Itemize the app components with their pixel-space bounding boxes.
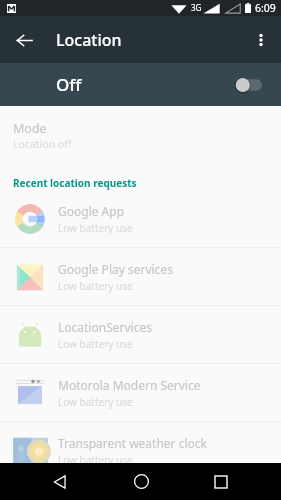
button[interactable]: Google App <box>0 190 281 247</box>
staticText: Low battery use <box>58 453 133 467</box>
staticText: Location <box>56 29 122 51</box>
staticText: Off <box>56 73 82 96</box>
button[interactable]: Home <box>120 463 162 500</box>
button[interactable]: Navigate up <box>8 24 40 56</box>
staticText: Google App <box>58 203 125 219</box>
button[interactable]: Off <box>0 63 281 106</box>
staticText: Google Play services <box>58 261 173 277</box>
staticText: Motorola Modern Service <box>58 377 201 393</box>
staticText: Location off <box>13 137 72 151</box>
staticText: 6:09 <box>255 1 276 15</box>
button[interactable]: Mode <box>0 106 281 151</box>
staticText: Low battery use <box>58 279 133 293</box>
staticText: 3G <box>191 2 202 13</box>
button[interactable]: Transparent weather clock <box>0 422 281 479</box>
button[interactable]: Motorola Modern Service <box>0 364 281 421</box>
button[interactable]: Google Play services <box>0 248 281 305</box>
staticText: Transparent weather clock <box>58 435 207 451</box>
button[interactable]: Back <box>39 463 81 500</box>
other: Location switch <box>236 77 262 93</box>
staticText: Recent location requests <box>13 176 137 190</box>
button[interactable]: Recent apps <box>200 463 242 500</box>
staticText: Low battery use <box>58 337 133 351</box>
staticText: Low battery use <box>58 395 133 409</box>
staticText: Mode <box>13 120 47 137</box>
staticText: Low battery use <box>58 221 133 235</box>
staticText: LocationServices <box>58 319 152 335</box>
button[interactable]: More options <box>245 24 277 56</box>
button[interactable]: LocationServices <box>0 306 281 363</box>
